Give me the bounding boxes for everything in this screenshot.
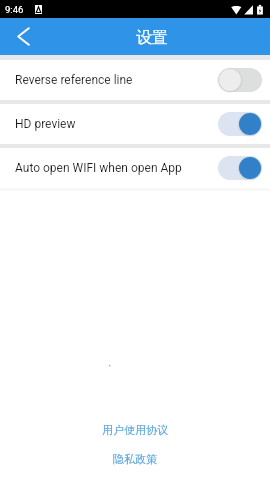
button[interactable]: Reverse reference line <box>0 60 270 100</box>
button[interactable]: HD preview <box>0 104 270 144</box>
button[interactable]: Toggle on <box>218 112 262 136</box>
button[interactable]: Toggle off <box>218 68 262 92</box>
staticText: 设置 <box>136 28 168 48</box>
button[interactable]: 隐私政策 <box>107 449 163 469</box>
button[interactable]: Toggle on <box>218 156 262 180</box>
button[interactable]: 用户使用协议 <box>96 420 174 440</box>
button[interactable]: Back <box>0 18 46 55</box>
staticText: Reverse reference line <box>15 73 133 87</box>
staticText: HD preview <box>15 117 76 131</box>
staticText: 9:46 <box>5 4 24 15</box>
button[interactable]: Auto open WIFI when open App <box>0 148 270 188</box>
staticText: Auto open WIFI when open App <box>15 161 182 175</box>
